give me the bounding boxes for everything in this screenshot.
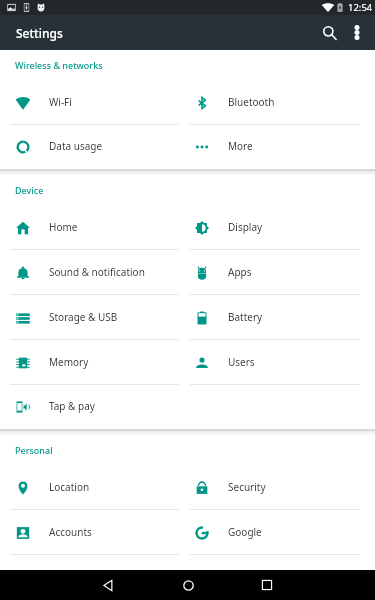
button[interactable]: Apps [179, 250, 361, 295]
staticText: Security [228, 480, 266, 494]
staticText: Apps [228, 265, 252, 279]
staticText: Wireless & networks [15, 59, 103, 71]
button[interactable]: Location [0, 465, 179, 510]
staticText: Bluetooth [228, 95, 275, 109]
staticText: Google [228, 525, 262, 539]
staticText: Device [15, 184, 44, 196]
button[interactable]: Search [313, 15, 342, 50]
button[interactable]: Wi-Fi [0, 80, 179, 125]
staticText: Accounts [49, 525, 92, 539]
button[interactable]: Storage & USB [0, 295, 179, 340]
button[interactable]: Users [179, 340, 361, 385]
button[interactable]: Recents [247, 570, 287, 600]
button[interactable]: More options [342, 15, 375, 50]
staticText: Home [49, 220, 78, 234]
button[interactable]: Home [168, 570, 208, 600]
staticText: Location [49, 480, 90, 494]
button[interactable]: Data usage [0, 125, 179, 169]
staticText: Battery [228, 310, 263, 324]
staticText: Users [228, 355, 255, 369]
button[interactable]: Sound & notification [0, 250, 179, 295]
button[interactable]: More [179, 125, 361, 169]
staticText: Settings [16, 25, 63, 41]
staticText: Data usage [49, 139, 103, 153]
button[interactable]: Security [179, 465, 361, 510]
staticText: Tap & pay [49, 399, 95, 413]
staticText: Memory [49, 355, 89, 369]
staticText: Storage & USB [49, 310, 118, 324]
button[interactable]: Battery [179, 295, 361, 340]
button[interactable]: Tap & pay [0, 385, 179, 429]
staticText: 12:54 [348, 1, 373, 14]
button[interactable]: Accounts [0, 510, 179, 555]
button[interactable]: Home [0, 205, 179, 250]
button[interactable]: Memory [0, 340, 179, 385]
staticText: Sound & notification [49, 265, 145, 279]
staticText: More [228, 139, 253, 153]
button[interactable]: Google [179, 510, 361, 555]
staticText: Wi-Fi [49, 95, 72, 109]
staticText: Display [228, 220, 263, 234]
button[interactable]: Bluetooth [179, 80, 361, 125]
button[interactable]: Back [88, 570, 128, 600]
button[interactable]: Display [179, 205, 361, 250]
staticText: Personal [15, 444, 53, 456]
